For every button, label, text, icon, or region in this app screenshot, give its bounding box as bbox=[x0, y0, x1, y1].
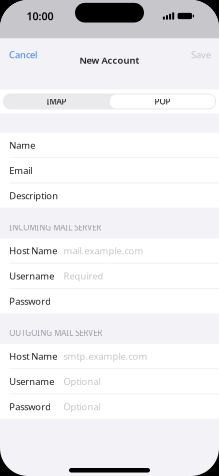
staticText: Username bbox=[9, 270, 54, 282]
staticText: IMAP bbox=[47, 96, 67, 107]
staticText: Cancel bbox=[9, 48, 37, 61]
button[interactable]: Name bbox=[0, 133, 219, 157]
staticText: New Account bbox=[79, 54, 139, 66]
staticText: mail.example.com bbox=[63, 244, 143, 257]
button[interactable]: Email bbox=[0, 158, 219, 183]
staticText: 10:00 bbox=[26, 9, 53, 23]
staticText: Email bbox=[9, 164, 32, 176]
staticText: Required bbox=[63, 270, 103, 282]
staticText: Password bbox=[9, 295, 51, 307]
staticText: Name bbox=[9, 139, 35, 151]
button[interactable]: Save bbox=[185, 43, 219, 66]
staticText: POP bbox=[154, 96, 170, 107]
staticText: Optional bbox=[63, 375, 100, 387]
button[interactable]: Username bbox=[0, 369, 219, 394]
button[interactable]: Cancel bbox=[0, 43, 43, 66]
staticText: smtp.example.com bbox=[63, 350, 147, 362]
staticText: OUTGOING MAIL SERVER bbox=[9, 328, 102, 338]
button[interactable]: Password bbox=[0, 289, 219, 313]
button[interactable]: IMAP bbox=[4, 94, 109, 109]
button[interactable]: Password bbox=[0, 394, 219, 419]
staticText: Description bbox=[9, 189, 58, 202]
button[interactable]: Host Name bbox=[0, 238, 219, 263]
staticText: Password bbox=[9, 400, 51, 413]
button[interactable]: Description bbox=[0, 183, 219, 208]
staticText: Username bbox=[9, 375, 54, 387]
staticText: Save bbox=[191, 48, 211, 61]
button[interactable]: POP bbox=[109, 94, 215, 109]
staticText: Optional bbox=[63, 400, 100, 413]
staticText: INCOMING MAIL SERVER bbox=[9, 222, 101, 233]
button[interactable]: Host Name bbox=[0, 344, 219, 368]
button[interactable]: Username bbox=[0, 264, 219, 288]
staticText: Host Name bbox=[9, 244, 57, 257]
staticText: Host Name bbox=[9, 350, 57, 362]
